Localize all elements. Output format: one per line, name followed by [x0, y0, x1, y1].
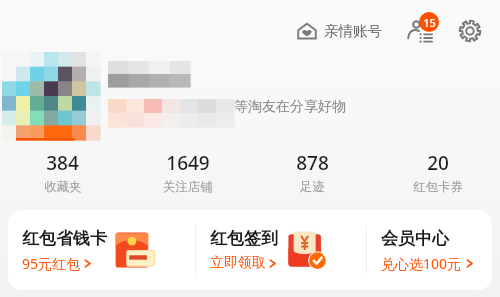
staticText: 兑心选100元	[381, 254, 462, 273]
button[interactable]: 384	[0, 148, 125, 197]
staticText: 等淘友在分享好物	[234, 98, 346, 116]
button[interactable]: Messages	[400, 11, 440, 51]
staticText: 95元红包	[22, 254, 81, 273]
staticText: 1649	[166, 150, 210, 176]
button[interactable]: 20	[375, 148, 500, 197]
staticText: 红包签到	[210, 228, 278, 249]
button[interactable]: 红包省钱卡	[8, 210, 195, 290]
button[interactable]: 等淘友在分享好物	[234, 98, 346, 116]
staticText: 15	[423, 15, 436, 30]
staticText: 878	[296, 150, 329, 176]
button[interactable]: Settings	[450, 11, 490, 51]
button[interactable]: 1649	[125, 148, 250, 197]
staticText: 红包省钱卡	[22, 228, 107, 249]
button[interactable]: 878	[250, 148, 375, 197]
button[interactable]: 亲情账号	[292, 16, 386, 46]
staticText: 384	[46, 150, 79, 176]
staticText: 20	[427, 150, 449, 176]
button[interactable]: Avatar	[2, 52, 100, 140]
staticText: 亲情账号	[324, 22, 382, 40]
staticText: 会员中心	[381, 228, 449, 249]
staticText: 立即领取	[210, 254, 266, 272]
staticText: 红包卡券	[413, 179, 463, 195]
staticText: 收藏夹	[44, 179, 82, 195]
button[interactable]: 红包签到	[196, 210, 366, 290]
staticText: 关注店铺	[163, 179, 213, 195]
staticText: 足迹	[300, 179, 325, 195]
button[interactable]: 会员中心	[367, 210, 492, 290]
